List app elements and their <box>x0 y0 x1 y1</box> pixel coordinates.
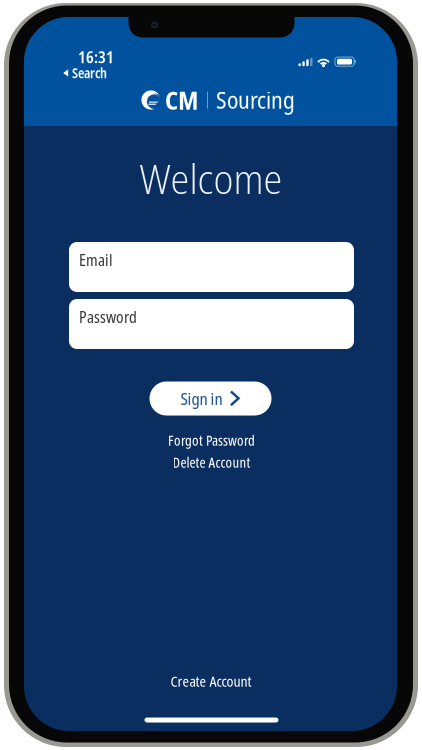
staticText: Email <box>79 249 113 271</box>
staticText: Create Account <box>170 671 251 691</box>
staticText: Sourcing <box>216 85 295 115</box>
staticText: Search <box>72 64 107 82</box>
staticText: Welcome <box>139 150 282 206</box>
staticText: Password <box>79 306 137 328</box>
staticText: Sign in <box>180 387 222 410</box>
staticText: CM <box>165 83 199 117</box>
button[interactable]: Email <box>69 242 354 292</box>
button[interactable]: Forgot Password <box>126 432 296 448</box>
button[interactable]: Sign in <box>149 381 271 415</box>
staticText: Forgot Password <box>168 430 255 450</box>
button[interactable]: Create Account <box>126 673 296 689</box>
staticText: 16:31 <box>78 46 114 68</box>
staticText: Delete Account <box>172 452 250 472</box>
button[interactable]: Delete Account <box>126 454 296 470</box>
button[interactable]: Password <box>69 299 354 349</box>
